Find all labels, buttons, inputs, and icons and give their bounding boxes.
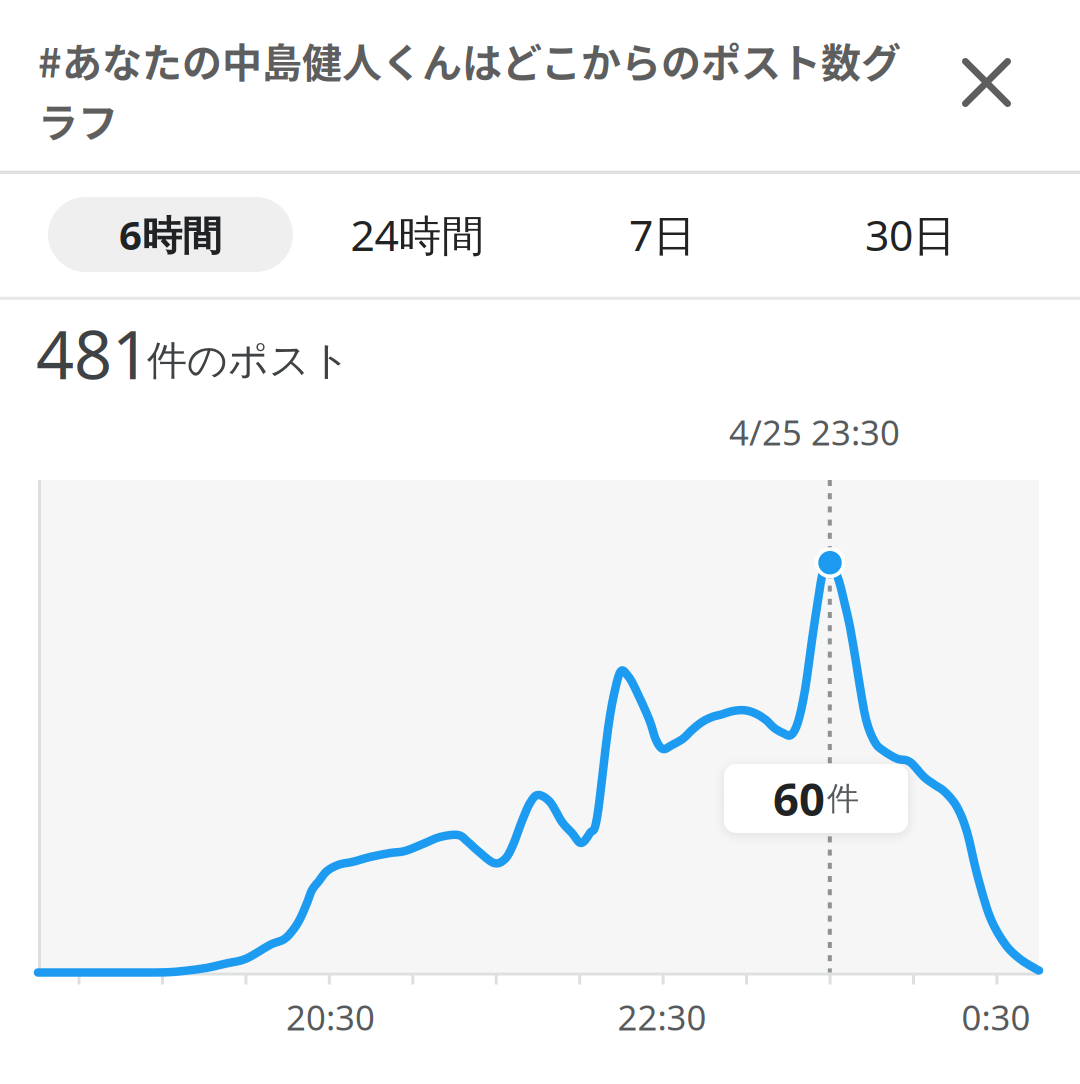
staticText: 481 bbox=[36, 309, 150, 397]
staticText: 0:30 bbox=[961, 994, 1030, 1040]
staticText: 7日 bbox=[629, 206, 696, 263]
button[interactable]: 7日 bbox=[542, 197, 783, 272]
staticText: 4/25 23:30 bbox=[729, 409, 900, 455]
staticText: 24時間 bbox=[350, 206, 484, 263]
staticText: 件のポスト bbox=[147, 336, 351, 385]
staticText: #あなたの中島健人くんはどこからのポスト数グ bbox=[38, 31, 901, 89]
button[interactable]: 24時間 bbox=[293, 197, 542, 272]
staticText: 件 bbox=[827, 779, 859, 818]
staticText: 22:30 bbox=[617, 994, 706, 1040]
staticText: 6時間 bbox=[119, 208, 222, 261]
staticText: 20:30 bbox=[286, 994, 375, 1040]
button[interactable]: 30日 bbox=[783, 197, 1038, 272]
button[interactable]: Close bbox=[942, 38, 1030, 126]
staticText: 60 bbox=[773, 768, 825, 829]
staticText: 30日 bbox=[865, 206, 956, 263]
staticText: ラフ bbox=[38, 91, 118, 149]
button[interactable]: 6時間 bbox=[48, 197, 293, 272]
